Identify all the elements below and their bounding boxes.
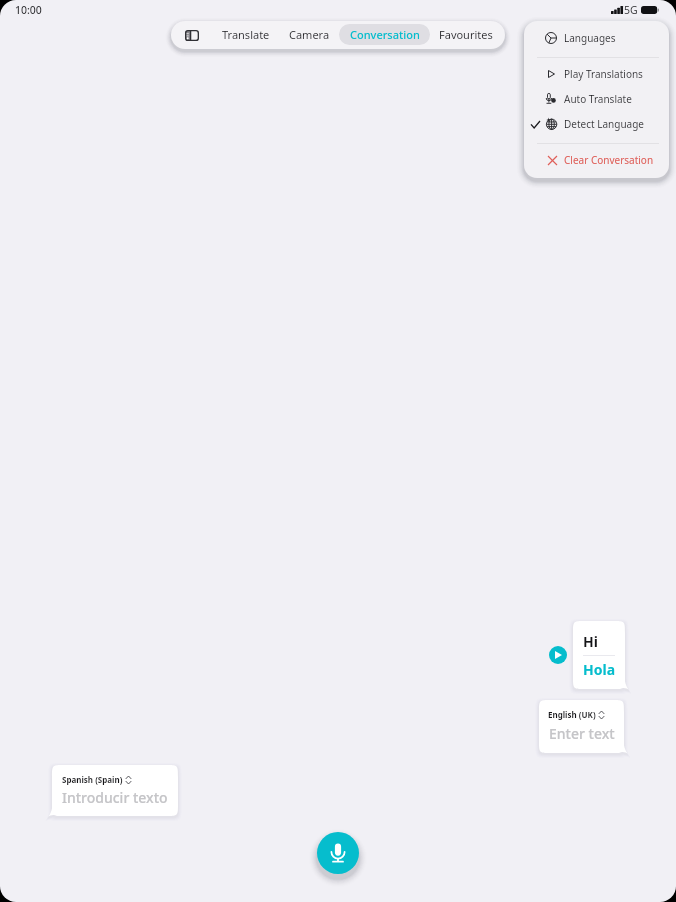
- button[interactable]: Toggle sidebar: [177, 21, 206, 49]
- staticText: Auto Translate: [564, 92, 632, 106]
- button[interactable]: Spanish (Spain): [52, 765, 178, 816]
- button[interactable]: Translate: [214, 24, 277, 45]
- button[interactable]: Start recording: [317, 832, 359, 874]
- button[interactable]: Camera: [281, 24, 338, 45]
- staticText: Play Translations: [564, 67, 643, 81]
- staticText: 5G: [624, 3, 638, 17]
- staticText: Clear Conversation: [564, 153, 654, 167]
- staticText: Detect Language: [564, 117, 644, 131]
- button[interactable]: Languages: [524, 26, 669, 50]
- button[interactable]: Play Translations: [524, 62, 669, 86]
- staticText: Camera: [289, 27, 330, 42]
- staticText: Hola: [583, 660, 616, 679]
- button[interactable]: English (UK): [539, 700, 624, 753]
- staticText: Translate: [222, 27, 270, 42]
- staticText: Enter text: [549, 724, 615, 743]
- button[interactable]: Clear Conversation: [524, 148, 669, 172]
- staticText: 10:00: [15, 3, 42, 17]
- staticText: Languages: [564, 31, 616, 45]
- button[interactable]: Detect Language: [524, 112, 669, 136]
- staticText: English (UK): [548, 709, 596, 720]
- button[interactable]: Favourites: [431, 24, 501, 45]
- button[interactable]: Conversation: [339, 24, 430, 45]
- button[interactable]: Play translation: [549, 646, 567, 664]
- staticText: Spanish (Spain): [62, 774, 123, 785]
- button[interactable]: Hi: [573, 621, 625, 689]
- staticText: Favourites: [439, 27, 493, 42]
- staticText: Conversation: [350, 27, 420, 42]
- staticText: Introducir texto: [62, 788, 168, 807]
- button[interactable]: Auto Translate: [524, 87, 669, 111]
- staticText: Hi: [583, 632, 598, 651]
